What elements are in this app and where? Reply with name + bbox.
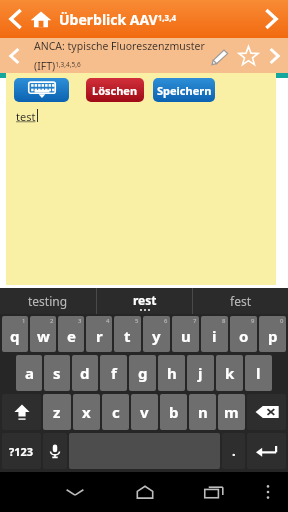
staticText: Speichern	[157, 83, 212, 98]
button[interactable]: d	[72, 355, 98, 391]
button[interactable]: b	[160, 394, 187, 430]
staticText: 3	[78, 317, 82, 325]
staticText: q	[10, 326, 20, 346]
staticText: ANCA: typische Fluoreszenzmuster (IFT)1,…	[34, 39, 205, 73]
button[interactable]: ?123	[2, 433, 41, 469]
staticText: Löschen	[92, 83, 138, 98]
staticText: x	[82, 402, 91, 422]
button[interactable]: Favorit	[234, 42, 262, 70]
button[interactable]: 5	[114, 316, 141, 352]
staticText: 7	[193, 317, 197, 325]
button[interactable]: 9	[230, 316, 257, 352]
button[interactable]: Vorheriger	[0, 38, 28, 73]
button[interactable]: testing	[0, 288, 96, 314]
button[interactable]: g	[129, 355, 156, 391]
button[interactable]: v	[131, 394, 158, 430]
button[interactable]: 2	[30, 316, 56, 352]
button[interactable]: Löschen	[247, 394, 286, 430]
staticText: ?123	[9, 444, 34, 459]
button[interactable]: Speichern	[153, 78, 215, 102]
staticText: z	[53, 402, 61, 422]
staticText: m	[224, 402, 239, 422]
staticText: 5	[135, 317, 139, 325]
button[interactable]: 4	[86, 316, 112, 352]
button[interactable]: 1	[2, 316, 28, 352]
staticText: c	[112, 402, 120, 422]
button[interactable]	[14, 78, 69, 102]
button[interactable]: h	[158, 355, 185, 391]
staticText: l	[256, 363, 261, 383]
staticText: r	[96, 326, 103, 346]
button[interactable]: Übersicht	[179, 472, 248, 512]
staticText: p	[268, 326, 278, 346]
staticText: j	[198, 363, 203, 383]
button[interactable]: a	[16, 355, 42, 391]
button[interactable]: m	[218, 394, 245, 430]
button[interactable]: z	[43, 394, 71, 430]
button[interactable]: Eingabe	[247, 433, 286, 469]
staticText: 2	[50, 317, 54, 325]
staticText: a	[25, 363, 34, 383]
staticText: n	[198, 402, 208, 422]
staticText: rest	[133, 292, 157, 308]
button[interactable]: Spracheingabe	[43, 433, 67, 469]
staticText: 4	[106, 317, 110, 325]
button[interactable]: rest	[97, 288, 192, 314]
button[interactable]: x	[73, 394, 100, 430]
staticText: d	[80, 363, 90, 383]
staticText: e	[67, 326, 76, 346]
button[interactable]: .	[222, 433, 245, 469]
staticText: s	[53, 363, 61, 383]
button[interactable]: 6	[143, 316, 170, 352]
staticText: i	[212, 326, 217, 346]
button[interactable]: k	[216, 355, 243, 391]
button[interactable]: Weiter	[256, 0, 288, 38]
button[interactable]: Zurück	[0, 0, 30, 38]
staticText: Überblick AAV1,3,4	[59, 10, 177, 29]
button[interactable]: f	[100, 355, 127, 391]
button[interactable]: 3	[58, 316, 84, 352]
button[interactable]: Tastatur ausblenden	[40, 472, 110, 512]
button[interactable]: 8	[201, 316, 228, 352]
button[interactable]: j	[187, 355, 214, 391]
staticText: v	[140, 402, 149, 422]
staticText: o	[239, 326, 249, 346]
button[interactable]: Startbildschirm	[110, 472, 179, 512]
button[interactable]: Umschalt	[2, 394, 41, 430]
button[interactable]: 7	[172, 316, 199, 352]
staticText: 0	[280, 317, 284, 325]
staticText: 9	[251, 317, 255, 325]
staticText: w	[37, 326, 50, 346]
button[interactable]: s	[44, 355, 70, 391]
button[interactable]: Löschen	[86, 78, 144, 102]
button[interactable]: n	[189, 394, 216, 430]
staticText: test	[16, 109, 36, 124]
staticText: u	[181, 326, 191, 346]
button[interactable]: c	[102, 394, 129, 430]
button[interactable]: Nächster	[262, 38, 288, 73]
button[interactable]: Home	[26, 4, 56, 34]
staticText: 8	[222, 317, 226, 325]
staticText: h	[167, 363, 177, 383]
staticText: g	[138, 363, 148, 383]
staticText: f	[111, 363, 117, 383]
staticText: testing	[28, 293, 68, 309]
staticText: fest	[230, 293, 251, 309]
staticText: 6	[164, 317, 168, 325]
button[interactable]: 0	[259, 316, 286, 352]
staticText: y	[152, 326, 161, 346]
staticText: k	[225, 363, 235, 383]
button[interactable]: Menü	[248, 472, 288, 512]
staticText: 1	[22, 317, 26, 325]
button[interactable]: Bearbeiten	[206, 42, 234, 70]
staticText: b	[169, 402, 179, 422]
button[interactable]: fest	[193, 288, 288, 314]
staticText: t	[124, 326, 131, 346]
staticText: .	[232, 442, 236, 460]
button[interactable]: l	[245, 355, 272, 391]
